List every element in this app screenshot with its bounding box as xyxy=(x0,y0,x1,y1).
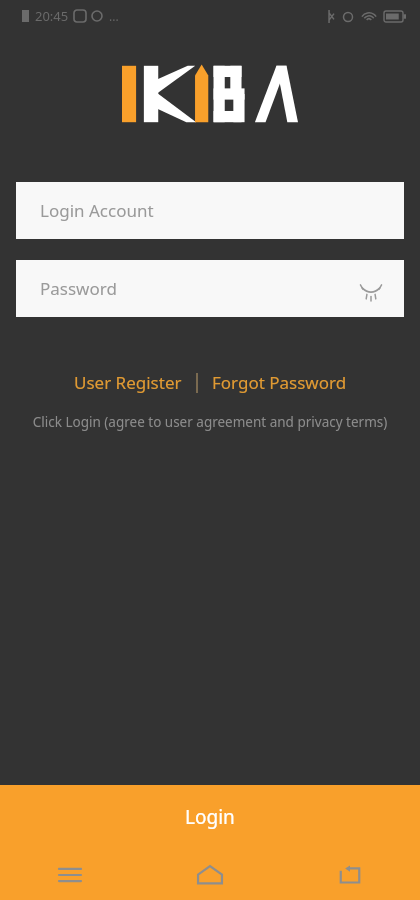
staticText: ... xyxy=(109,8,119,24)
button[interactable]: Home xyxy=(140,849,280,900)
button[interactable]: Show password xyxy=(356,274,386,304)
button[interactable]: User Register xyxy=(70,369,186,396)
staticText: Forgot Password xyxy=(212,371,347,394)
button[interactable]: Password xyxy=(16,260,404,317)
staticText: Login Account xyxy=(40,199,154,222)
staticText: Click Login (agree to user agreement and… xyxy=(0,413,420,431)
button[interactable]: Forgot Password xyxy=(208,369,351,396)
staticText: Password xyxy=(40,277,117,300)
staticText: Login xyxy=(185,804,235,830)
staticText: User Register xyxy=(74,371,182,394)
button[interactable]: Login xyxy=(0,785,420,849)
button[interactable]: Recents xyxy=(0,849,140,900)
staticText: 20:45 xyxy=(35,7,69,25)
button[interactable]: Back xyxy=(280,849,420,900)
button[interactable]: Login Account xyxy=(16,182,404,239)
